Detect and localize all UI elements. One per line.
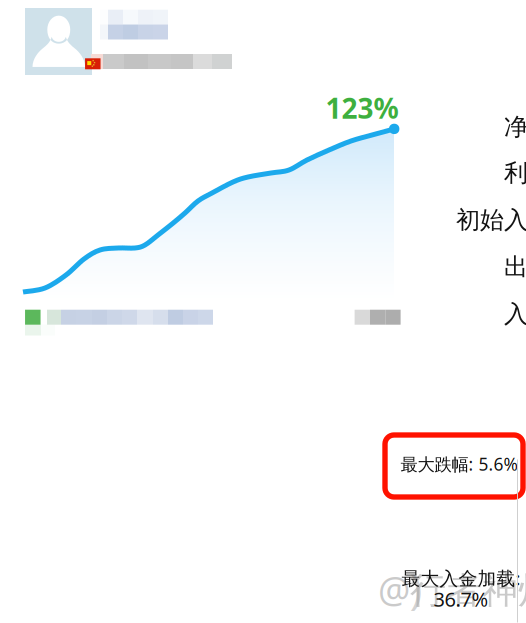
staticText: 36.7% xyxy=(433,586,488,612)
staticText: 出 xyxy=(504,252,526,282)
staticText: 最大跌幅: 5.6% xyxy=(400,452,517,475)
staticText: 利 xyxy=(504,158,526,188)
staticText: 净 xyxy=(504,112,526,142)
staticText: 最大入金加载: xyxy=(401,566,520,590)
staticText: 123% xyxy=(325,89,398,127)
staticText: @行者神灯 xyxy=(378,565,526,613)
staticText: ) xyxy=(409,560,422,616)
staticText: 初始入 xyxy=(456,205,526,235)
staticText: 入 xyxy=(504,299,526,329)
